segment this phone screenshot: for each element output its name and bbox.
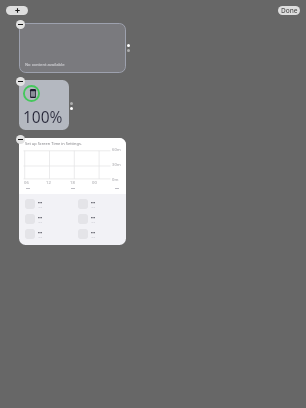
button[interactable]: App usage entry	[25, 229, 71, 240]
staticText: 18	[70, 180, 75, 186]
button[interactable]: App usage entry	[25, 199, 71, 210]
staticText: Set up Screen Time in Settings.	[25, 141, 82, 146]
staticText: Done	[281, 6, 298, 15]
button[interactable]: App usage entry	[78, 229, 124, 240]
button[interactable]: Set up Screen Time in Settings.	[19, 138, 126, 245]
button[interactable]: Add widget	[6, 6, 28, 15]
button[interactable]: App usage entry	[78, 199, 124, 210]
button[interactable]: Remove widget	[16, 77, 25, 86]
button[interactable]: Done	[278, 6, 300, 15]
button[interactable]: 100%	[19, 80, 69, 130]
staticText: No content available	[25, 62, 65, 68]
staticText: 06	[24, 180, 29, 186]
staticText: 100%	[23, 106, 63, 127]
staticText: 12	[46, 180, 51, 186]
staticText: 00	[92, 180, 97, 186]
button[interactable]: Remove widget	[16, 20, 25, 29]
button[interactable]: App usage entry	[78, 214, 124, 225]
button[interactable]: Remove widget	[16, 135, 25, 144]
staticText: 30m	[112, 162, 121, 168]
button[interactable]: App usage entry	[25, 214, 71, 225]
button[interactable]: No content available	[19, 23, 126, 73]
staticText: 60m	[112, 147, 121, 153]
staticText: 0m	[112, 177, 119, 183]
